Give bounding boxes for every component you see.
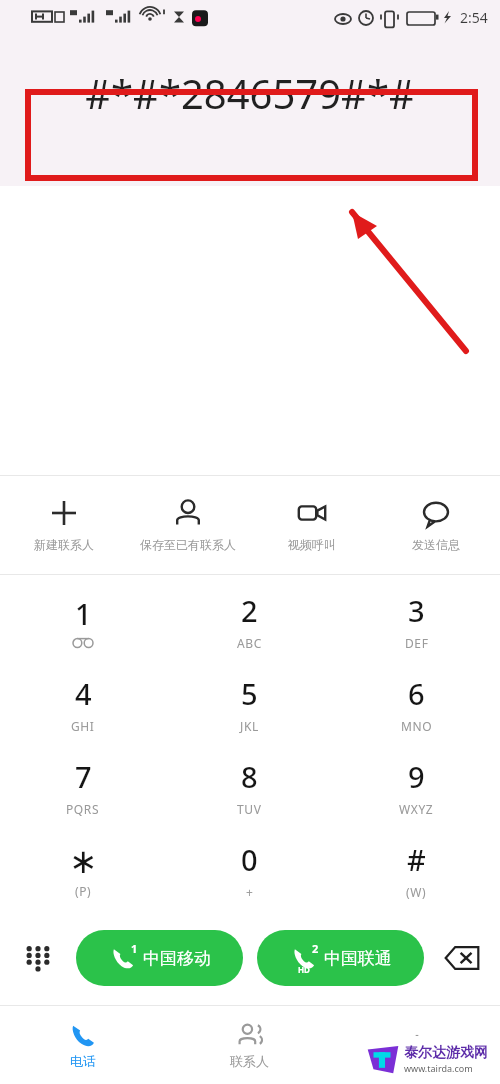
button[interactable]: Hide keypad [0, 911, 76, 1005]
staticText: 保存至已有联系人 [140, 537, 236, 552]
staticText: HD [298, 964, 310, 975]
staticText: 9 [408, 757, 425, 796]
button[interactable]: 4 [0, 662, 166, 745]
staticText: 5 [241, 674, 258, 713]
staticText: JKL [240, 718, 259, 734]
staticText: 联系人 [230, 1053, 269, 1069]
button[interactable]: Backspace [424, 911, 500, 1005]
staticText: #*#*2846579#*# [85, 66, 415, 120]
staticText: 6 [408, 674, 425, 713]
staticText: 3 [408, 591, 425, 630]
button[interactable]: # [333, 828, 500, 911]
button[interactable]: 1 [0, 579, 166, 662]
button[interactable]: 2 [257, 930, 424, 986]
staticText: # [407, 840, 426, 879]
button[interactable]: 2 [166, 579, 333, 662]
staticText: 8 [241, 757, 258, 796]
staticText: 发送信息 [412, 537, 460, 552]
button[interactable]: 9 [333, 745, 500, 828]
staticText: 2 [312, 941, 319, 956]
button[interactable]: 6 [333, 662, 500, 745]
staticText: PQRS [66, 801, 100, 817]
staticText: 中国移动 [143, 948, 211, 969]
staticText: www.tairda.com [404, 1062, 473, 1074]
staticText: 1 [75, 594, 92, 633]
staticText: (P) [75, 883, 92, 899]
button[interactable] [333, 1006, 500, 1084]
button[interactable]: 联系人 [166, 1006, 333, 1084]
staticText: WXYZ [399, 801, 434, 817]
button[interactable]: 0 [166, 828, 333, 911]
button[interactable]: 5 [166, 662, 333, 745]
button[interactable]: 3 [333, 579, 500, 662]
staticText: 新建联系人 [34, 537, 94, 552]
staticText: 泰尔达游戏网 [404, 1044, 488, 1062]
staticText: + [246, 884, 254, 900]
staticText: ABC [237, 635, 262, 651]
staticText: 视频呼叫 [288, 537, 336, 552]
staticText: MNO [401, 718, 433, 734]
staticText: 1 [131, 941, 138, 956]
button[interactable]: 1 [76, 930, 243, 986]
button[interactable]: 新建联系人 [4, 492, 124, 558]
staticText: ∗ [69, 841, 98, 881]
staticText: 0 [241, 840, 258, 879]
staticText: 2 [241, 591, 258, 630]
staticText: 中国联通 [324, 948, 392, 969]
staticText: 电话 [70, 1053, 96, 1069]
staticText: (W) [406, 884, 427, 900]
staticText: 4 [75, 674, 92, 713]
button[interactable]: 电话 [0, 1006, 166, 1084]
button[interactable]: 8 [166, 745, 333, 828]
staticText: 7 [75, 757, 92, 796]
staticText: TUV [237, 801, 262, 817]
button[interactable]: 视频呼叫 [252, 492, 372, 558]
button[interactable]: ∗ [0, 828, 166, 911]
button[interactable]: 7 [0, 745, 166, 828]
button[interactable]: 发送信息 [376, 492, 496, 558]
staticText: GHI [71, 718, 95, 734]
staticText: DEF [405, 635, 429, 651]
staticText: 2:54 [460, 8, 488, 27]
button[interactable]: 保存至已有联系人 [128, 492, 248, 558]
